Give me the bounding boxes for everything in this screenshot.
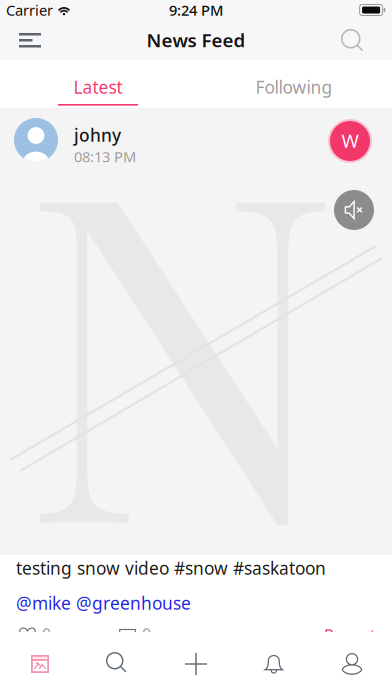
staticText: Latest <box>73 75 122 98</box>
button[interactable]: Latest <box>0 60 196 108</box>
button[interactable]: Weather <box>328 119 372 163</box>
staticText: Following <box>255 75 332 98</box>
button[interactable]: Unmute <box>334 190 374 230</box>
staticText: testing snow video #snow #saskatoon <box>16 556 326 579</box>
staticText: News Feed <box>146 28 245 52</box>
button[interactable]: New post <box>157 632 235 696</box>
button[interactable]: Menu <box>6 20 54 60</box>
staticText: 9:24 PM <box>169 0 223 20</box>
button[interactable]: Comment <box>119 626 179 642</box>
button[interactable]: Search <box>330 22 378 62</box>
staticText: johny <box>74 123 121 146</box>
staticText: Carrier <box>6 0 53 20</box>
staticText: @mike @greenhouse <box>16 591 191 614</box>
staticText: 0 <box>42 623 51 645</box>
staticText: 08:13 PM <box>74 147 136 166</box>
staticText: W <box>341 128 358 153</box>
button[interactable]: Search <box>79 632 157 696</box>
staticText: Report <box>324 624 376 646</box>
button[interactable]: Like <box>19 626 79 642</box>
button[interactable]: Following <box>196 60 392 108</box>
button[interactable]: Report <box>310 627 376 643</box>
button[interactable]: Notifications <box>235 632 313 696</box>
staticText: 0 <box>142 623 151 645</box>
button[interactable]: Profile <box>313 632 391 696</box>
staticText: N <box>21 33 341 637</box>
button[interactable]: News Feed <box>1 632 79 696</box>
